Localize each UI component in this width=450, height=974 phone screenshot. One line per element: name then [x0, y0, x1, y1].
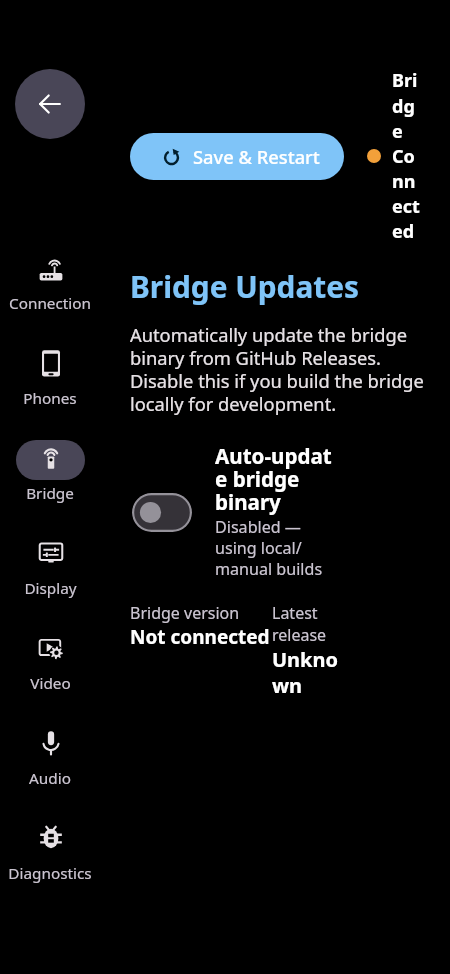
- staticText: Video: [30, 673, 71, 694]
- button[interactable]: Phones: [0, 345, 100, 423]
- staticText: Disabled — using local/ manual builds: [215, 516, 323, 580]
- staticText: Bridge: [26, 483, 74, 504]
- button[interactable]: Audio: [0, 725, 100, 803]
- button[interactable]: Bridge: [0, 440, 100, 518]
- button[interactable]: Back: [15, 69, 85, 139]
- staticText: Bridge version: [130, 602, 240, 624]
- staticText: Save & Restart: [193, 144, 320, 169]
- staticText: Bridge Updates: [130, 266, 359, 307]
- staticText: Not connected: [130, 624, 270, 650]
- staticText: Audio: [29, 768, 71, 789]
- button[interactable]: Display: [0, 535, 100, 613]
- button[interactable]: Diagnostics: [0, 820, 100, 898]
- staticText: Phones: [23, 388, 77, 409]
- staticText: Connection: [9, 293, 91, 314]
- button[interactable]: Video: [0, 630, 100, 708]
- button[interactable]: Auto-updat e bridge binary: [132, 442, 332, 580]
- button[interactable]: Save & Restart: [130, 133, 344, 180]
- staticText: Diagnostics: [8, 863, 92, 884]
- staticText: Display: [24, 578, 77, 599]
- staticText: Automatically update the bridge binary f…: [130, 322, 430, 417]
- staticText: Bri dg e Co nn ect ed: [392, 68, 420, 243]
- staticText: Unkno wn: [272, 646, 339, 699]
- button[interactable]: [132, 493, 192, 532]
- staticText: Latest release: [272, 602, 327, 646]
- staticText: Auto-updat e bridge binary: [215, 442, 332, 516]
- button[interactable]: Connection: [0, 250, 100, 328]
